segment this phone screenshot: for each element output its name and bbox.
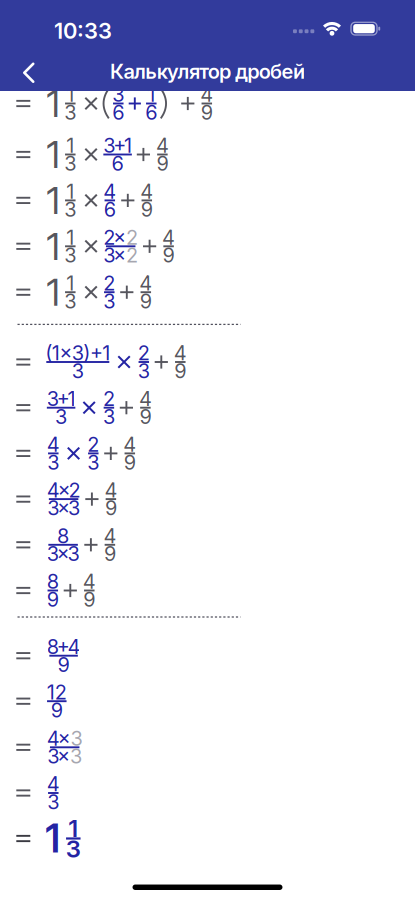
- staticText: 8: [57, 524, 69, 548]
- staticText: 2×: [103, 225, 126, 249]
- staticText: 3: [70, 744, 82, 768]
- staticText: 4: [139, 271, 152, 295]
- staticText: 3: [55, 405, 67, 429]
- staticText: 6: [104, 197, 116, 221]
- staticText: 1: [66, 82, 74, 107]
- staticText: 1: [68, 814, 78, 843]
- staticText: 4: [139, 387, 152, 411]
- staticText: 4: [174, 341, 187, 365]
- staticText: 1: [45, 815, 60, 862]
- staticText: 9: [201, 100, 213, 125]
- staticText: 3×3: [47, 496, 80, 520]
- staticText: 9: [51, 698, 63, 722]
- staticText: 9: [139, 405, 151, 429]
- staticText: 3: [72, 359, 84, 383]
- staticText: 4: [162, 225, 175, 249]
- staticText: 1: [46, 81, 60, 126]
- staticText: 3: [47, 450, 59, 474]
- staticText: 2: [126, 243, 138, 267]
- staticText: 4: [140, 179, 153, 204]
- staticText: 8+4: [47, 635, 80, 659]
- staticText: 4: [104, 478, 117, 502]
- staticText: 4×2: [47, 478, 80, 502]
- staticText: 2: [138, 341, 150, 365]
- staticText: 9: [140, 289, 152, 313]
- staticText: 3+1: [47, 387, 75, 411]
- staticText: 4: [103, 524, 116, 548]
- staticText: 3: [47, 790, 59, 814]
- staticText: 3: [64, 100, 76, 125]
- staticText: Калькулятор дробей: [110, 59, 305, 84]
- staticText: 3: [66, 834, 81, 863]
- staticText: 2: [103, 271, 115, 295]
- staticText: 3: [64, 243, 76, 267]
- staticText: 1: [46, 224, 60, 269]
- staticText: 9: [163, 243, 175, 267]
- staticText: 4: [123, 432, 136, 457]
- staticText: 4: [156, 133, 169, 158]
- staticText: 8: [47, 569, 59, 594]
- staticText: 1: [66, 271, 74, 295]
- staticText: 3: [138, 359, 150, 383]
- staticText: 4: [103, 179, 116, 204]
- staticText: 2: [126, 225, 138, 249]
- staticText: 10:33: [54, 17, 112, 44]
- staticText: 9: [124, 450, 136, 474]
- staticText: 3+1: [103, 133, 132, 158]
- staticText: 9: [174, 359, 186, 383]
- staticText: 3×3: [47, 542, 79, 566]
- staticText: 3: [87, 450, 99, 474]
- staticText: 3×: [47, 744, 70, 768]
- staticText: 1: [66, 179, 74, 204]
- staticText: (1×3)+1: [45, 341, 110, 365]
- staticText: 4×: [47, 726, 71, 750]
- staticText: 1: [66, 225, 74, 249]
- staticText: 4: [200, 82, 213, 107]
- staticText: 9: [141, 197, 153, 221]
- staticText: 6: [112, 100, 124, 125]
- staticText: 1: [147, 82, 155, 107]
- staticText: 6: [145, 100, 157, 125]
- staticText: 4: [47, 772, 60, 796]
- staticText: 1: [46, 178, 60, 223]
- staticText: 2: [87, 432, 99, 457]
- staticText: 1: [46, 132, 60, 177]
- staticText: 4: [83, 569, 96, 594]
- staticText: 3: [64, 197, 76, 221]
- staticText: 1: [66, 133, 74, 158]
- staticText: 9: [83, 587, 95, 612]
- staticText: 3: [71, 726, 83, 750]
- staticText: 3: [64, 289, 76, 313]
- staticText: 9: [156, 151, 168, 176]
- staticText: 6: [112, 151, 124, 176]
- staticText: 9: [47, 587, 59, 612]
- staticText: 3: [103, 289, 115, 313]
- staticText: 3: [103, 405, 115, 429]
- staticText: 3: [112, 82, 124, 107]
- staticText: 9: [58, 653, 70, 677]
- staticText: 12: [47, 680, 67, 704]
- staticText: 9: [105, 496, 117, 520]
- staticText: 3×: [103, 243, 126, 267]
- staticText: 2: [103, 387, 115, 411]
- staticText: 3: [64, 151, 76, 176]
- staticText: 9: [104, 542, 116, 566]
- staticText: 1: [46, 270, 60, 315]
- staticText: 4: [47, 432, 60, 457]
- button[interactable]: [14, 53, 54, 93]
